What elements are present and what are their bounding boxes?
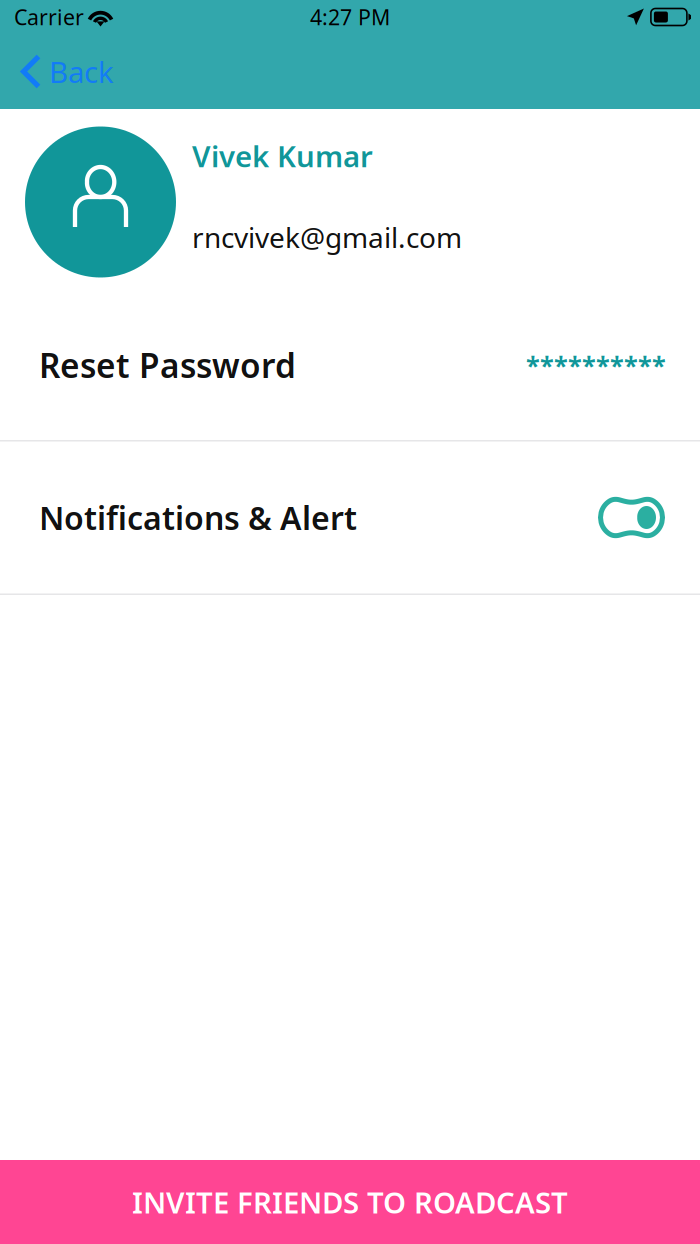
button[interactable]: Back [0,34,128,109]
button[interactable]: Notifications and Alert [596,489,667,545]
staticText: 4:27 PM [310,3,390,31]
staticText: Carrier [14,3,84,31]
staticText: ********** [526,348,666,382]
staticText: Vivek Kumar [192,136,373,175]
staticText: rncvivek@gmail.com [192,218,462,256]
button[interactable]: INVITE FRIENDS TO ROADCAST [0,1160,700,1244]
staticText: INVITE FRIENDS TO ROADCAST [132,1182,568,1221]
button[interactable]: Reset Password [0,290,700,440]
staticText: Notifications & Alert [39,496,357,539]
staticText: Back [49,52,114,91]
staticText: Reset Password [39,343,296,387]
